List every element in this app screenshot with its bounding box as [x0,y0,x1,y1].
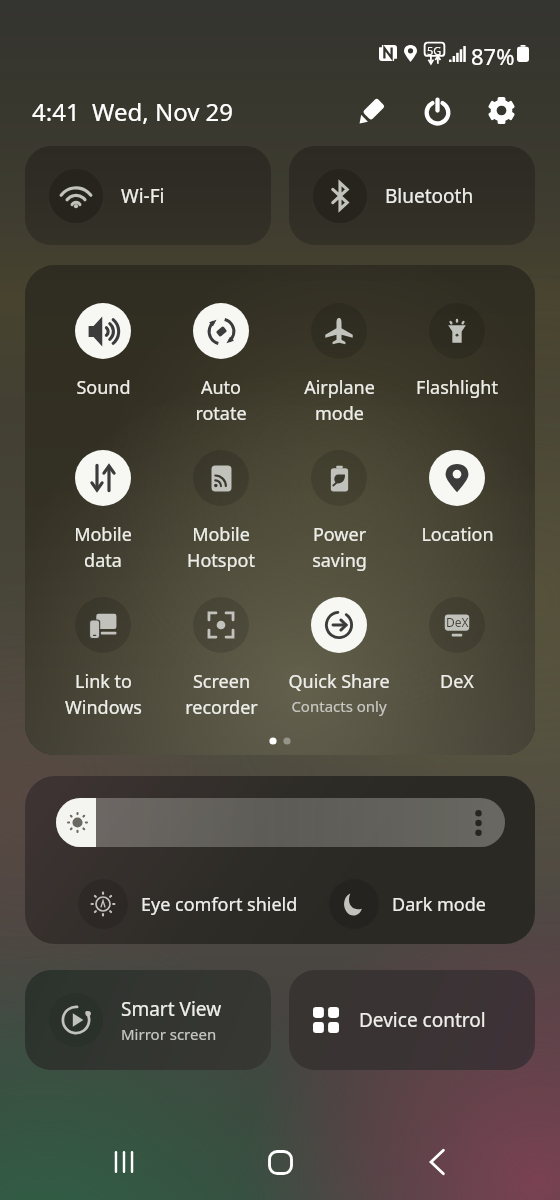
staticText: Wi-Fi [121,183,165,209]
button[interactable]: Dark mode [329,877,486,931]
button[interactable]: Back [405,1130,469,1194]
button[interactable]: Auto rotate [162,303,280,425]
staticText: Screen recorder [185,669,258,719]
staticText: 5G [427,43,442,58]
staticText: Power saving [312,522,367,572]
button[interactable]: Location [398,450,516,547]
staticText: Link to Windows [65,669,142,719]
button[interactable]: Link to Windows [44,597,162,719]
staticText: DeX [446,614,469,630]
staticText: Flashlight [416,375,498,400]
staticText: Auto rotate [195,375,247,425]
staticText: Smart View [121,996,222,1022]
button[interactable]: Wi-Fi [25,146,271,245]
button[interactable]: Settings [477,86,525,134]
staticText: Sound [76,375,131,400]
staticText: Quick Share [288,669,390,694]
staticText: DeX [440,669,474,694]
staticText: 4:41 Wed, Nov 29 [32,95,234,128]
button[interactable]: Screen recorder [162,597,280,719]
button[interactable]: Home [248,1130,312,1194]
staticText: 87% [471,41,515,71]
button[interactable]: Device control [289,970,535,1070]
button[interactable] [56,798,505,847]
button[interactable]: Recents [92,1130,156,1194]
button[interactable]: Bluetooth [289,146,535,245]
staticText: Mirror screen [121,1024,217,1044]
button[interactable]: Smart View [25,970,271,1070]
button[interactable]: Flashlight [398,303,516,400]
button[interactable]: Quick Share [280,597,398,716]
button[interactable]: Power [413,86,461,134]
staticText: Airplane mode [304,375,375,425]
staticText: Mobile data [74,522,132,572]
button[interactable]: Power saving [280,450,398,572]
button[interactable]: Eye comfort shield [78,877,298,931]
staticText: Contacts only [291,696,387,716]
button[interactable]: Sound [44,303,162,400]
button[interactable]: Mobile data [44,450,162,572]
button[interactable]: DeX [398,597,516,694]
staticText: Location [421,522,494,547]
button[interactable]: Mobile Hotspot [162,450,280,572]
staticText: Bluetooth [385,183,474,209]
staticText: Dark mode [392,892,486,917]
button[interactable]: Airplane mode [280,303,398,425]
staticText: Device control [359,1007,486,1033]
staticText: Eye comfort shield [141,892,298,917]
button[interactable]: Edit [348,86,396,134]
staticText: Mobile Hotspot [187,522,255,572]
